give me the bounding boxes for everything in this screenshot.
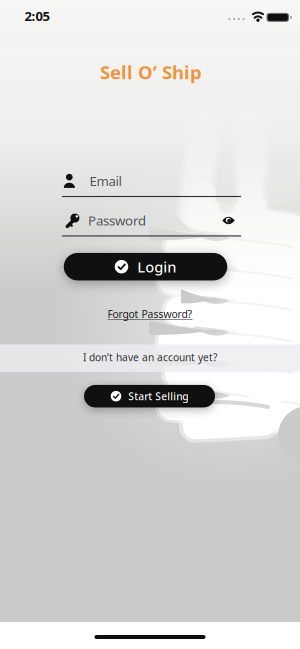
- staticText: Password: [88, 211, 146, 229]
- staticText: Start Selling: [128, 389, 188, 403]
- button[interactable]: Email: [62, 165, 241, 198]
- staticText: Email: [89, 172, 121, 190]
- staticText: Sell O’ Ship: [100, 59, 202, 85]
- staticText: 2:05: [24, 7, 49, 25]
- button[interactable]: [222, 216, 235, 225]
- button[interactable]: Start Selling: [84, 385, 215, 407]
- staticText: I don’t have an account yet?: [83, 350, 217, 364]
- staticText: Forgot Password?: [107, 307, 192, 321]
- button[interactable]: Password: [62, 205, 241, 238]
- button[interactable]: Login: [64, 253, 227, 280]
- staticText: Login: [137, 257, 176, 277]
- button[interactable]: Forgot Password?: [107, 307, 192, 321]
